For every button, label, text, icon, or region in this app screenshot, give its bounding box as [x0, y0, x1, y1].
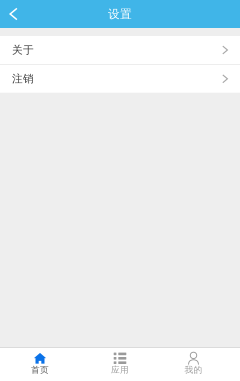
button[interactable]: 我的 — [160, 348, 227, 381]
staticText: 设置 — [108, 7, 132, 21]
button[interactable]: 首页 — [0, 348, 80, 381]
staticText: 注销 — [12, 72, 34, 85]
staticText: 首页 — [31, 364, 49, 375]
staticText: 应用 — [111, 364, 129, 375]
staticText: 关于 — [12, 43, 34, 57]
button[interactable]: 注销 — [0, 65, 240, 93]
button[interactable]: Back — [0, 0, 27, 28]
button[interactable]: 应用 — [80, 348, 160, 381]
staticText: 我的 — [184, 364, 202, 375]
button[interactable]: 关于 — [0, 36, 240, 64]
